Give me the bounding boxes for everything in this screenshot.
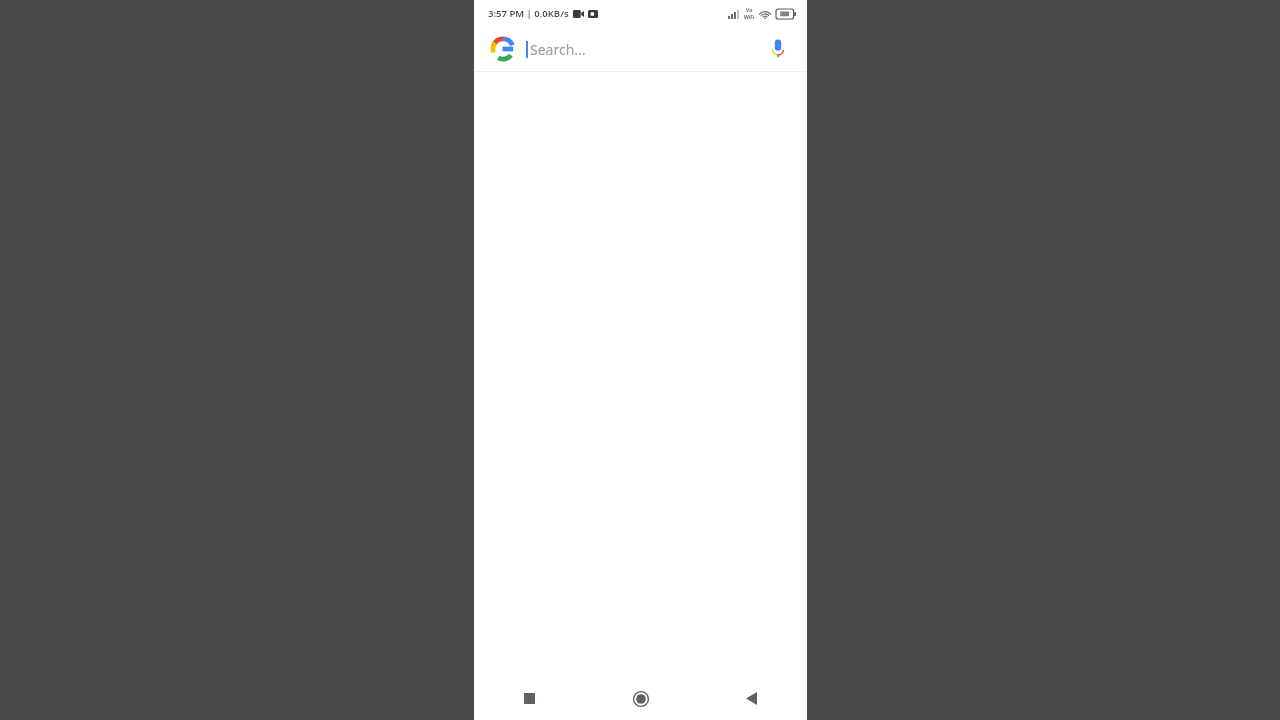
staticText: Vo [746, 7, 753, 14]
button[interactable]: Home [585, 677, 696, 720]
button[interactable]: Recent apps [474, 677, 585, 720]
button[interactable]: Voice search [761, 32, 795, 66]
button[interactable]: Back [696, 677, 807, 720]
button[interactable]: Search... [474, 27, 807, 71]
staticText: WiFi [744, 14, 755, 21]
staticText: 3:57 PM | 0.0KB/s [488, 7, 569, 20]
staticText: Search... [530, 40, 586, 59]
